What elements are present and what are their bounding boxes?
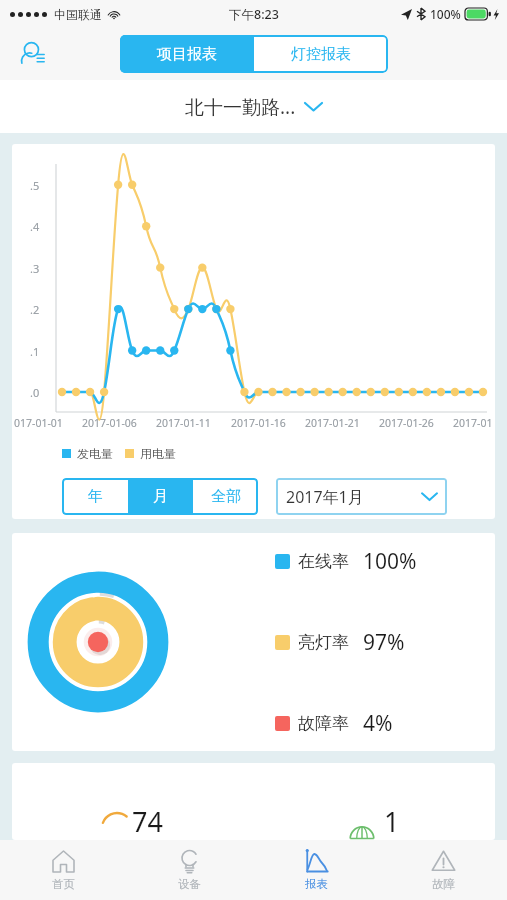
- staticText: 100%: [430, 6, 461, 22]
- button[interactable]: 北十一勤路...: [0, 80, 507, 133]
- staticText: 2017-01: [453, 416, 493, 430]
- staticText: 灯控报表: [291, 45, 351, 64]
- staticText: 月: [153, 487, 168, 506]
- staticText: 017-01-01: [14, 416, 63, 430]
- staticText: 发电量: [77, 446, 113, 461]
- button[interactable]: 月: [128, 478, 193, 515]
- staticText: 4%: [363, 709, 393, 738]
- button[interactable]: 故障率: [275, 709, 467, 738]
- button[interactable]: Account: [18, 39, 48, 69]
- staticText: .1: [30, 344, 40, 359]
- staticText: .2: [30, 302, 40, 317]
- staticText: 亮灯率: [298, 632, 349, 653]
- button[interactable]: 年: [62, 478, 128, 515]
- staticText: 100%: [363, 547, 417, 576]
- staticText: 下午8:23: [229, 6, 279, 23]
- staticText: 故障率: [298, 713, 349, 734]
- staticText: .4: [30, 219, 40, 234]
- staticText: 报表: [305, 877, 328, 891]
- button[interactable]: 故障: [380, 840, 507, 900]
- button[interactable]: 2017年1月: [276, 478, 447, 515]
- staticText: 全部: [211, 487, 241, 506]
- staticText: 项目报表: [157, 45, 217, 64]
- button[interactable]: 灯控报表: [254, 35, 388, 73]
- staticText: 2017年1月: [286, 486, 364, 508]
- staticText: .5: [30, 178, 40, 193]
- staticText: 设备: [178, 877, 201, 891]
- staticText: 2017-01-16: [231, 416, 286, 430]
- staticText: 用电量: [140, 446, 176, 461]
- button[interactable]: 首页: [0, 840, 126, 900]
- button[interactable]: 全部: [193, 478, 258, 515]
- staticText: .0: [30, 385, 40, 400]
- staticText: 中国联通: [54, 7, 102, 22]
- staticText: 2017-01-06: [82, 416, 137, 430]
- staticText: 故障: [432, 877, 455, 891]
- staticText: 97%: [363, 628, 405, 657]
- button[interactable]: 报表: [253, 840, 380, 900]
- staticText: 74: [132, 803, 163, 840]
- staticText: 1: [384, 803, 400, 840]
- button[interactable]: 亮灯率: [275, 628, 467, 657]
- staticText: 2017-01-26: [379, 416, 434, 430]
- staticText: 北十一勤路...: [185, 94, 296, 120]
- button[interactable]: 在线率: [275, 547, 467, 576]
- button[interactable]: 项目报表: [120, 35, 254, 73]
- staticText: .3: [30, 261, 40, 276]
- staticText: 首页: [52, 877, 75, 891]
- staticText: 年: [88, 487, 103, 506]
- button[interactable]: 设备: [126, 840, 253, 900]
- staticText: 在线率: [298, 551, 349, 572]
- staticText: 2017-01-11: [156, 416, 211, 430]
- staticText: 2017-01-21: [305, 416, 360, 430]
